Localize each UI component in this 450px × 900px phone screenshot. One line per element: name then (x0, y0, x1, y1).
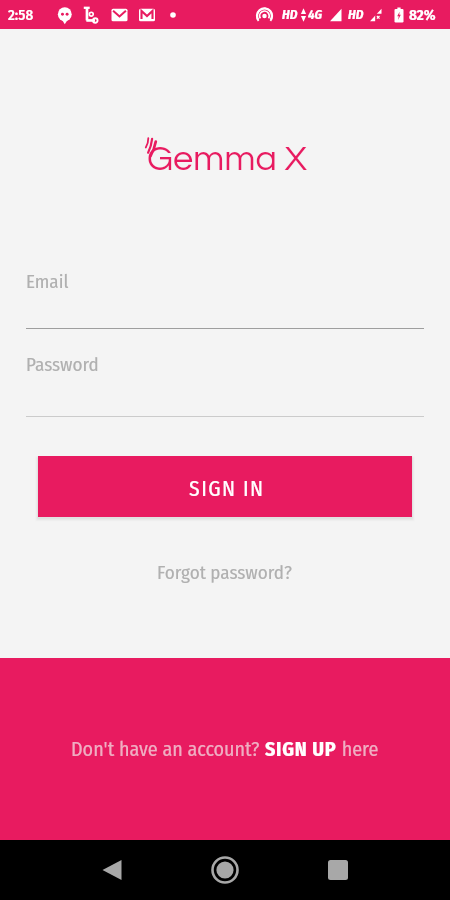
button[interactable]: Password (26, 347, 424, 430)
staticText: SIGN IN (189, 476, 265, 502)
staticText: Email (26, 270, 69, 293)
button[interactable]: Email (26, 264, 424, 342)
staticText: here (337, 737, 379, 761)
staticText: 2:58 (8, 6, 34, 24)
staticText: Gemma X (147, 140, 307, 177)
button[interactable]: Home (205, 840, 245, 900)
staticText: 82% (409, 6, 436, 24)
staticText: Forgot password? (157, 561, 293, 584)
button[interactable]: Back (92, 840, 132, 900)
button[interactable]: Don't have an account? (71, 737, 379, 761)
staticText: SIGN UP (265, 737, 337, 761)
button[interactable]: SIGN IN (38, 456, 412, 517)
button[interactable]: Recent apps (318, 840, 358, 900)
staticText: Password (26, 353, 99, 376)
button[interactable]: Forgot password? (0, 557, 450, 587)
staticText: Don't have an account? (71, 737, 265, 761)
staticText: 4G (308, 7, 323, 23)
staticText: HD (282, 7, 298, 23)
staticText: HD (348, 7, 364, 23)
